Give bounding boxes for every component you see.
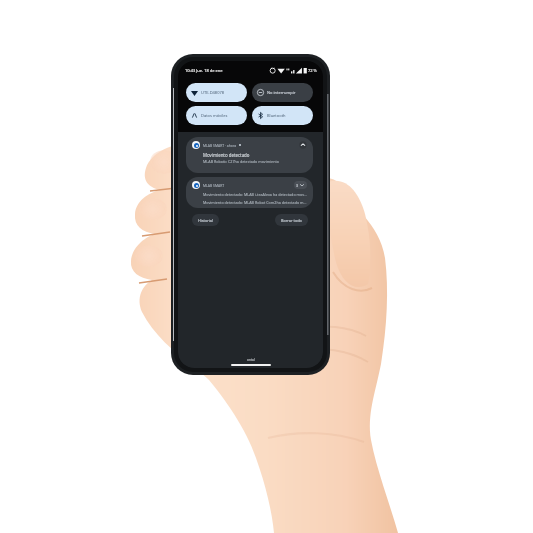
staticText: 72 % (308, 68, 317, 73)
staticText: UTE-D48078 (201, 90, 225, 95)
staticText: MLAB SMART · ahora (203, 143, 237, 148)
staticText: Movimiento detectado: MLAB Robot Com2ha … (203, 200, 307, 204)
staticText: Movimiento detectado (203, 152, 250, 158)
other: Expandir (299, 182, 305, 188)
staticText: 10:43 Jue. 18 de ene (185, 68, 223, 73)
button[interactable]: MLAB SMART · ahora (186, 137, 313, 173)
staticText: Bluetooth (267, 113, 286, 118)
staticText: Historial (198, 218, 213, 223)
button[interactable]: Datos móviles (186, 106, 247, 125)
staticText: ontal (247, 358, 255, 362)
staticText: Borrar todo (281, 218, 302, 223)
button[interactable]: Historial (192, 214, 219, 226)
button[interactable]: No interrumpir (252, 83, 313, 102)
button[interactable]: Bluetooth (252, 106, 313, 125)
button[interactable]: MLAB SMART (186, 177, 313, 208)
staticText: 3 (296, 183, 298, 188)
button[interactable]: 3 (294, 181, 307, 189)
staticText: Datos móviles (201, 113, 228, 118)
staticText: MLAB SMART (203, 183, 225, 188)
other: Contraer (299, 141, 307, 149)
staticText: MLAB Robotic C27ha detectado movimiento (203, 159, 280, 164)
button[interactable]: Borrar todo (275, 214, 308, 226)
staticText: No interrumpir (267, 90, 296, 95)
staticText: Movimiento detectado: MLAB i-teaAlexa ha… (203, 192, 307, 197)
button[interactable]: UTE-D48078 (186, 83, 247, 102)
